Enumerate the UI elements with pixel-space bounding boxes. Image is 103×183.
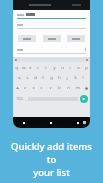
button[interactable]: m xyxy=(73,83,82,93)
button[interactable]: t xyxy=(42,63,50,73)
button[interactable] xyxy=(67,35,85,42)
button[interactable]: v xyxy=(46,83,55,93)
staticText: x xyxy=(32,85,35,91)
button[interactable]: i xyxy=(66,63,74,73)
staticText: s xyxy=(26,75,29,81)
staticText: , xyxy=(25,96,27,101)
staticText: g xyxy=(50,75,53,81)
button[interactable]: g xyxy=(47,73,55,83)
button[interactable]: Send xyxy=(80,95,88,103)
staticText: e xyxy=(29,65,32,71)
button[interactable] xyxy=(18,35,36,42)
button[interactable]: q xyxy=(13,63,20,73)
button[interactable]: d xyxy=(31,73,39,83)
staticText: l xyxy=(82,75,84,81)
button[interactable]: e xyxy=(27,63,34,73)
staticText: y xyxy=(53,65,56,71)
staticText: o xyxy=(77,65,80,71)
button[interactable]: l xyxy=(79,73,87,83)
staticText: q xyxy=(15,65,18,71)
staticText: d xyxy=(34,75,37,81)
button[interactable]: w xyxy=(20,63,27,73)
button[interactable]: j xyxy=(63,73,71,83)
staticText: f xyxy=(42,75,44,81)
staticText: j xyxy=(66,75,68,81)
button[interactable]: z xyxy=(21,83,29,93)
staticText: m xyxy=(76,85,80,91)
button[interactable]: Comma xyxy=(23,93,28,104)
button[interactable]: Symbols xyxy=(15,93,23,104)
staticText: r xyxy=(37,65,39,71)
button[interactable]: o xyxy=(74,63,82,73)
staticText: your list xyxy=(33,166,70,179)
button[interactable]: u xyxy=(58,63,66,73)
button[interactable]: f xyxy=(39,73,47,83)
staticText: p xyxy=(85,65,88,71)
staticText: w xyxy=(22,65,26,71)
button[interactable]: k xyxy=(71,73,79,83)
staticText: h xyxy=(58,75,61,81)
staticText: n xyxy=(67,85,70,91)
staticText: k xyxy=(74,75,77,81)
button[interactable]: h xyxy=(55,73,63,83)
button[interactable] xyxy=(43,35,61,42)
staticText: v xyxy=(49,85,52,91)
staticText: i xyxy=(69,65,71,71)
button[interactable]: y xyxy=(50,63,58,73)
button[interactable]: c xyxy=(37,83,46,93)
staticText: ?123 xyxy=(16,97,23,101)
button[interactable]: a xyxy=(16,73,23,83)
button[interactable] xyxy=(17,48,86,54)
button[interactable]: Backspace xyxy=(82,83,90,93)
staticText: z xyxy=(24,85,26,91)
button[interactable]: x xyxy=(29,83,37,93)
button[interactable]: n xyxy=(64,83,73,93)
staticText: c xyxy=(40,85,43,91)
button[interactable] xyxy=(17,24,86,29)
staticText: t xyxy=(45,65,47,71)
staticText: u xyxy=(61,65,64,71)
staticText: Quickly add items to xyxy=(6,140,97,166)
button[interactable]: p xyxy=(82,63,90,73)
staticText: a xyxy=(18,75,21,81)
staticText: b xyxy=(58,85,61,91)
button[interactable] xyxy=(17,13,86,19)
button[interactable]: Shift xyxy=(13,83,21,93)
button[interactable]: s xyxy=(23,73,31,83)
button[interactable]: b xyxy=(55,83,64,93)
button[interactable]: r xyxy=(34,63,42,73)
